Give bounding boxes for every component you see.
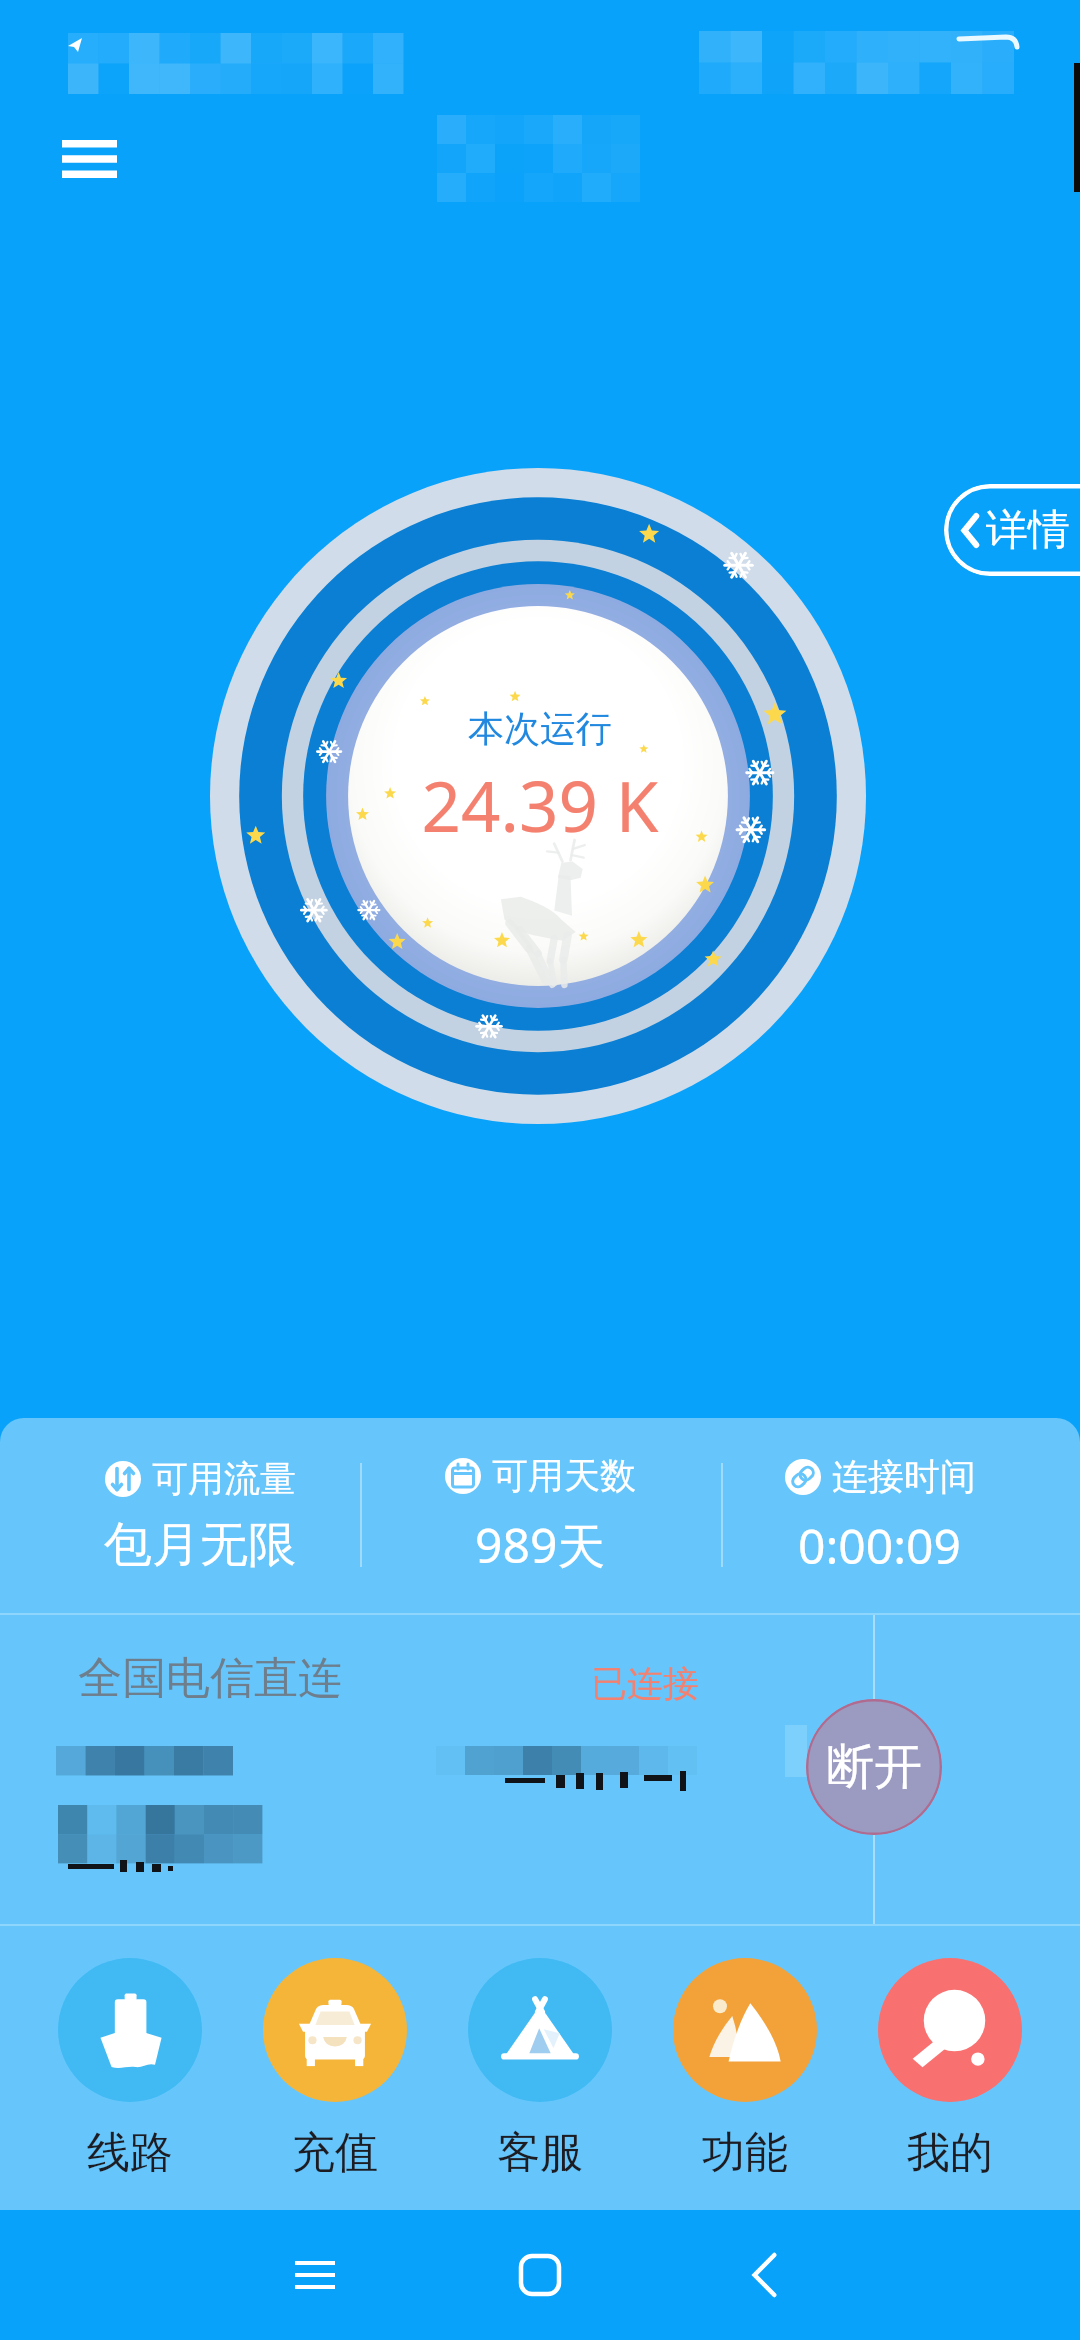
staticText: 包月无限 bbox=[104, 1515, 296, 1575]
staticText: 功能 bbox=[702, 2126, 788, 2180]
staticText: 充值 bbox=[292, 2126, 378, 2180]
staticText: 线路 bbox=[87, 2126, 173, 2180]
staticText: 已连接 bbox=[591, 1661, 699, 1706]
button[interactable]: Recents bbox=[256, 2216, 374, 2334]
staticText: 989天 bbox=[475, 1512, 606, 1578]
staticText: 可用流量 bbox=[152, 1456, 296, 1501]
button[interactable]: 详情 bbox=[944, 484, 1080, 576]
staticText: 全国电信直连 bbox=[78, 1651, 342, 1706]
button[interactable]: Menu bbox=[30, 112, 148, 206]
staticText: 24.39 K bbox=[0, 758, 1080, 852]
button[interactable]: 断开 bbox=[806, 1699, 942, 1835]
button[interactable]: 我的 bbox=[847, 1926, 1052, 2210]
staticText: 可用天数 bbox=[492, 1453, 636, 1498]
staticText: 断开 bbox=[826, 1737, 922, 1797]
button[interactable]: 连接时间 bbox=[710, 1418, 1050, 1613]
staticText: 详情 bbox=[986, 504, 1070, 557]
button[interactable]: Back bbox=[706, 2216, 824, 2334]
staticText: 我的 bbox=[907, 2126, 993, 2180]
staticText: 连接时间 bbox=[832, 1454, 976, 1499]
staticText: 0:00:09 bbox=[798, 1513, 962, 1578]
button[interactable]: 可用流量 bbox=[30, 1418, 370, 1613]
staticText: 客服 bbox=[497, 2126, 583, 2180]
button[interactable]: 功能 bbox=[642, 1926, 847, 2210]
button[interactable]: 客服 bbox=[437, 1926, 642, 2210]
button[interactable]: 线路 bbox=[28, 1926, 232, 2210]
staticText: 本次运行 bbox=[0, 706, 1080, 751]
button[interactable]: Home bbox=[481, 2216, 599, 2334]
button[interactable]: 充值 bbox=[232, 1926, 437, 2210]
button[interactable]: 可用天数 bbox=[370, 1418, 710, 1613]
